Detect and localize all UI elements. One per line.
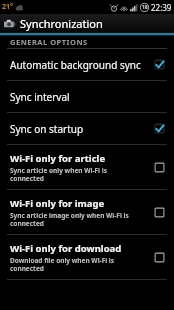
staticText: Sync interval [10, 90, 165, 104]
button[interactable]: Synchronization [0, 14, 174, 33]
staticText: 18 [142, 4, 148, 11]
staticText: 22:39 [151, 2, 172, 13]
staticText: Wi-Fi only for article [10, 152, 106, 165]
button[interactable]: Automatic background sync [0, 49, 174, 80]
button[interactable]: Sync interval [0, 81, 174, 112]
staticText: Automatic background sync [10, 58, 154, 72]
button[interactable]: Sync on startup [0, 113, 174, 144]
button[interactable]: Wi-Fi only for image [0, 190, 174, 234]
button[interactable]: Unchecked [154, 207, 165, 218]
button[interactable]: Unchecked [154, 252, 165, 263]
staticText: Wi-Fi only for image [10, 197, 105, 210]
staticText: GENERAL OPTIONS [10, 37, 88, 47]
staticText: 21° [2, 2, 13, 12]
staticText: Synchronization [20, 16, 103, 31]
staticText: Sync article only when Wi-Fi is connecte… [10, 166, 107, 183]
staticText: Wi-Fi only for download [10, 242, 122, 255]
button[interactable]: Checked [154, 59, 165, 70]
button[interactable]: Checked [154, 123, 165, 134]
button[interactable]: Wi-Fi only for article [0, 145, 174, 189]
staticText: Download file only when Wi-Fi is connect… [10, 256, 115, 273]
button[interactable]: Unchecked [154, 162, 165, 173]
staticText: Sync on startup [10, 122, 154, 136]
staticText: Sync article image only when Wi-Fi is co… [10, 211, 129, 228]
button[interactable]: Wi-Fi only for download [0, 235, 174, 279]
